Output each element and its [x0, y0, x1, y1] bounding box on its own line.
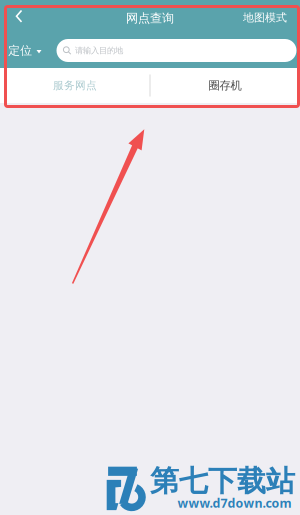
button[interactable]: 圈存机 [150, 68, 300, 103]
button[interactable]: 服务网点 [0, 68, 150, 103]
button[interactable]: 地图模式 [243, 5, 300, 30]
staticText: 请输入目的地 [75, 45, 123, 56]
staticText: 第七下载站 [150, 463, 295, 499]
staticText: 地图模式 [243, 11, 287, 24]
staticText: 网点查询 [126, 10, 174, 26]
staticText: 圈存机 [208, 78, 241, 93]
button[interactable]: 返回 [0, 2, 46, 32]
button[interactable]: 请输入目的地 [56, 39, 296, 62]
staticText: 服务网点 [53, 79, 97, 92]
staticText: 定位 [8, 43, 32, 58]
button[interactable]: 定位 [0, 39, 41, 62]
staticText: www.d7down.com [178, 495, 292, 511]
